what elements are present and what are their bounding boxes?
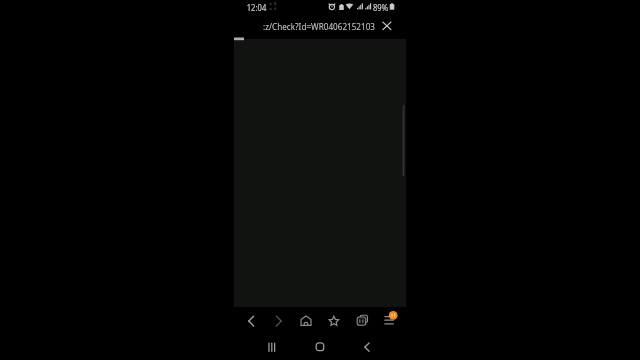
staticText: 12:04 [246,1,266,14]
button[interactable]: Home page [297,312,315,330]
staticText: 89% [373,1,388,14]
button[interactable]: Back [242,312,260,330]
button[interactable]: :z/Check?Id=WR04062152103 [252,17,386,36]
button[interactable]: Close tab [379,18,395,34]
button[interactable]: Menu [380,311,398,329]
button[interactable]: Back [358,338,376,356]
button[interactable]: Home [311,338,329,356]
button[interactable]: Recent apps [263,338,281,356]
button[interactable]: Forward [270,312,288,330]
button[interactable]: Tabs [354,312,372,330]
button[interactable]: Bookmarks [325,312,343,330]
staticText: :z/Check?Id=WR04062152103 [263,20,375,33]
